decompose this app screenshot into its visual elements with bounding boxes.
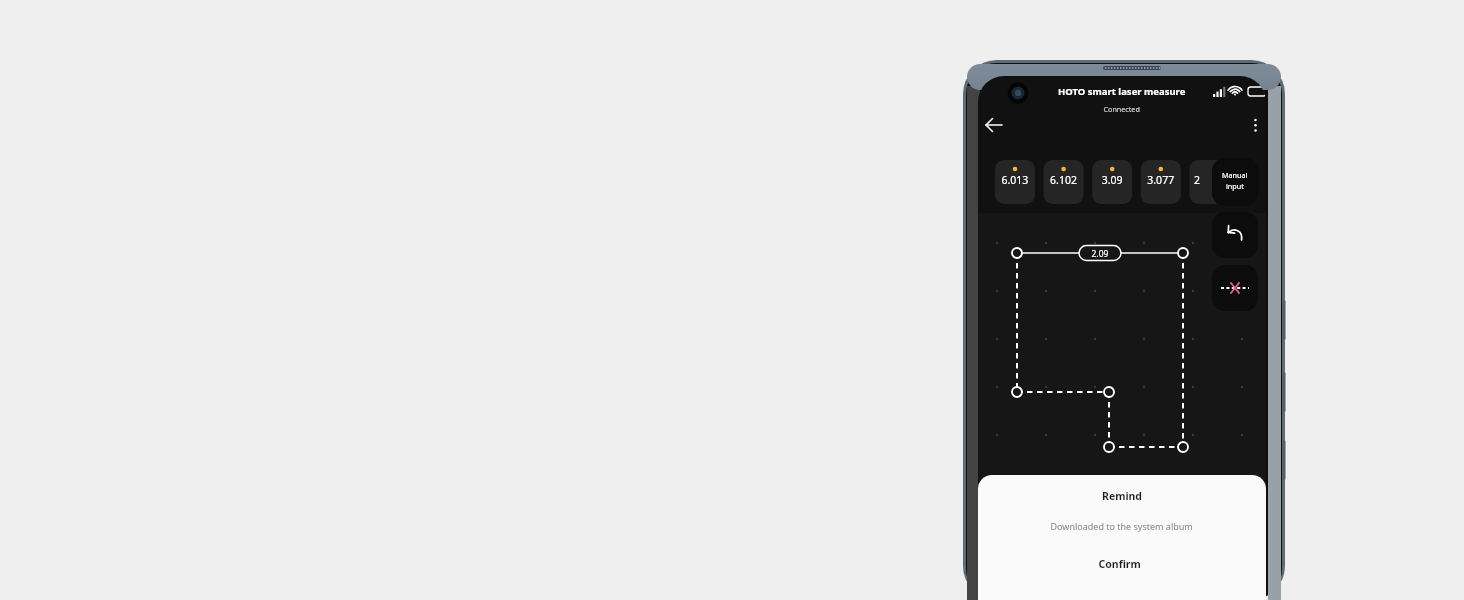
button[interactable] [1043,160,1083,204]
button[interactable]: Back [983,113,1009,139]
button[interactable] [995,160,1035,204]
button[interactable]: Undo [1212,212,1258,258]
button[interactable] [1092,160,1132,204]
button[interactable] [978,548,1266,584]
button[interactable] [1141,160,1181,204]
button[interactable]: More options [1244,113,1268,139]
button[interactable]: Delete segment [1212,265,1258,311]
button[interactable] [1212,158,1258,206]
